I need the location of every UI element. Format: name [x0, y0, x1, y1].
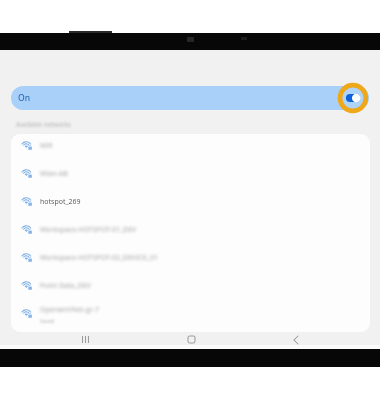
- staticText: Wlan-AB: [40, 169, 68, 179]
- button[interactable]: Workspace-HOTSPOT-01_DEV: [11, 215, 370, 243]
- staticText: On: [18, 92, 31, 104]
- button[interactable]: Recent apps: [74, 332, 96, 347]
- staticText: Wifi: [40, 141, 53, 151]
- staticText: Workspace-HOTSPOT-01_DEV: [40, 225, 137, 235]
- button[interactable]: Workspace-HOTSPOT-02_DEVICE_01: [11, 243, 370, 271]
- button[interactable]: Back: [285, 332, 307, 347]
- button[interactable]: Openwrt/Net-gr-7: [11, 299, 370, 327]
- button[interactable]: On: [11, 86, 369, 110]
- staticText: Point Data_DEV: [40, 281, 91, 291]
- button[interactable]: Home: [180, 332, 202, 347]
- button[interactable]: Point Data_DEV: [11, 271, 370, 299]
- staticText: Saved: [40, 317, 55, 324]
- staticText: Available networks: [16, 120, 71, 128]
- button[interactable]: Wifi: [11, 134, 370, 159]
- button[interactable]: hotspot_269: [11, 187, 370, 215]
- staticText: hotspot_269: [40, 197, 81, 207]
- staticText: Openwrt/Net-gr-7: [40, 305, 100, 315]
- staticText: Workspace-HOTSPOT-02_DEVICE_01: [40, 253, 159, 263]
- button[interactable]: Turn off Wi-Fi: [335, 80, 371, 116]
- button[interactable]: Wlan-AB: [11, 159, 370, 187]
